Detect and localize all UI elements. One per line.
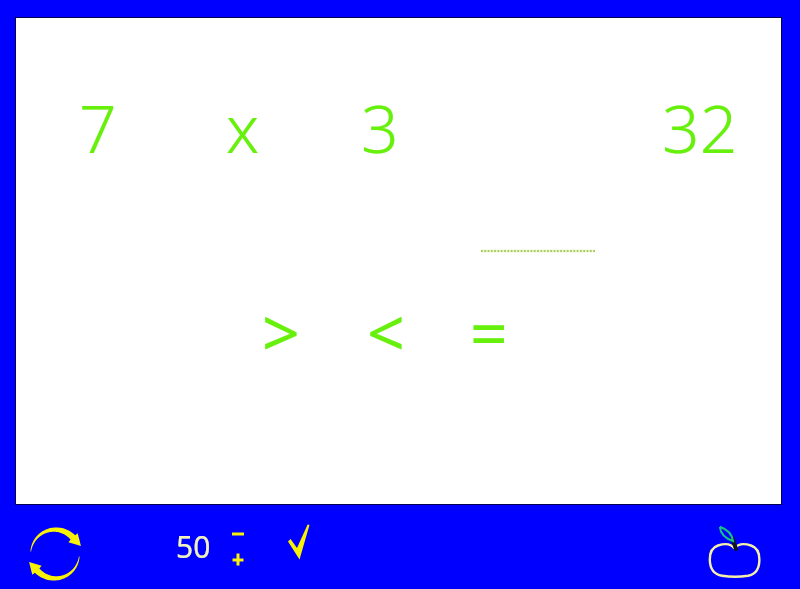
button[interactable]: Less than (362, 306, 406, 350)
staticText: = (470, 286, 508, 376)
button[interactable]: Adjust difficulty (226, 524, 252, 572)
button[interactable]: Check answer (286, 524, 314, 562)
staticText: > (262, 286, 300, 376)
button[interactable]: Answer field (481, 230, 611, 272)
staticText: x (226, 82, 260, 172)
staticText: < (367, 286, 405, 376)
button[interactable]: Greater than (257, 306, 301, 350)
staticText: 7 (79, 82, 117, 172)
staticText: 32 (662, 82, 738, 172)
staticText: 50 (176, 526, 211, 567)
button[interactable]: Refresh (27, 526, 83, 582)
button[interactable]: Equals (465, 306, 509, 350)
button[interactable]: Apple (706, 518, 764, 580)
staticText: 3 (361, 82, 399, 172)
